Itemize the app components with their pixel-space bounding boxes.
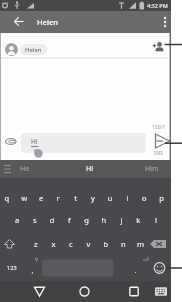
button[interactable] <box>47 281 94 302</box>
button[interactable] <box>151 130 171 152</box>
staticText: Helen <box>37 17 58 27</box>
button[interactable] <box>94 281 141 302</box>
button[interactable]: Him <box>145 160 171 178</box>
staticText: SMS <box>154 150 164 156</box>
button[interactable]: Hi <box>21 133 146 153</box>
staticText: Him <box>145 164 159 174</box>
staticText: He <box>20 164 30 174</box>
staticText: Hi <box>86 164 93 174</box>
button[interactable]: He <box>16 160 40 178</box>
staticText: 150/1 <box>152 124 166 131</box>
button[interactable] <box>155 11 171 33</box>
button[interactable] <box>0 178 171 281</box>
button[interactable] <box>152 41 164 53</box>
button[interactable] <box>0 281 47 302</box>
button[interactable] <box>5 43 18 56</box>
button[interactable] <box>0 11 22 33</box>
button[interactable]: Helen <box>20 44 47 55</box>
staticText: Hi <box>31 137 38 146</box>
button[interactable] <box>141 281 171 302</box>
button[interactable]: Hi <box>74 160 104 178</box>
button[interactable] <box>3 134 19 148</box>
staticText: Helen <box>25 46 42 54</box>
staticText: 4:32 PM <box>147 2 168 9</box>
